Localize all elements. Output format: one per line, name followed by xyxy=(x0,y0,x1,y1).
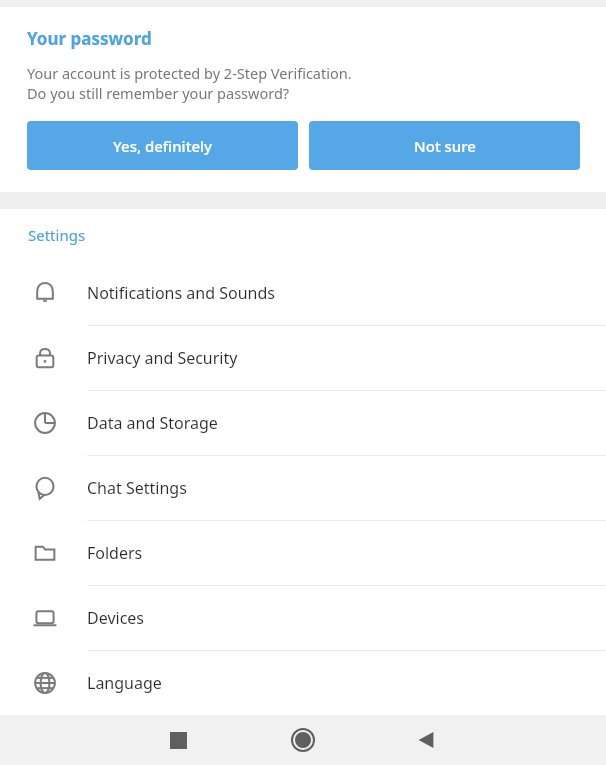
staticText: Yes, definitely xyxy=(113,136,212,156)
button[interactable]: Language xyxy=(0,651,606,715)
staticText: Not sure xyxy=(414,136,476,156)
staticText: Privacy and Security xyxy=(87,347,238,369)
staticText: Devices xyxy=(87,607,145,629)
button[interactable]: Notifications and Sounds xyxy=(0,261,606,325)
staticText: Language xyxy=(87,672,162,694)
button[interactable]: Recent apps xyxy=(148,715,208,765)
staticText: Data and Storage xyxy=(87,412,218,434)
staticText: Your account is protected by 2-Step Veri… xyxy=(27,63,352,104)
button[interactable]: Home xyxy=(273,715,333,765)
button[interactable]: Privacy and Security xyxy=(0,326,606,390)
staticText: Folders xyxy=(87,542,143,564)
staticText: Notifications and Sounds xyxy=(87,282,275,304)
staticText: Your password xyxy=(27,27,152,50)
button[interactable]: Back xyxy=(397,715,457,765)
button[interactable]: Chat Settings xyxy=(0,456,606,520)
button[interactable]: Devices xyxy=(0,586,606,650)
button[interactable]: Yes, definitely xyxy=(27,121,298,170)
staticText: Settings xyxy=(28,225,86,245)
button[interactable]: Data and Storage xyxy=(0,391,606,455)
button[interactable]: Folders xyxy=(0,521,606,585)
button[interactable]: Not sure xyxy=(309,121,580,170)
staticText: Chat Settings xyxy=(87,477,187,499)
